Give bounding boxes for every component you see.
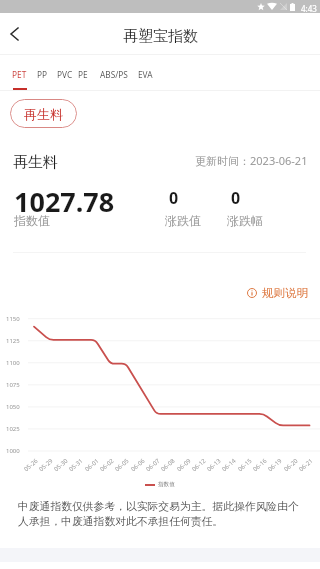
button[interactable]: PP [26,55,58,91]
staticText: 涨跌幅 [227,213,263,228]
staticText: 06-21 [297,457,315,473]
staticText: 1100 [6,359,20,367]
staticText: 1000 [6,447,20,455]
button[interactable]: 再生料 [10,99,77,128]
staticText: 06-07 [144,457,162,473]
staticText: 1027.78 [14,183,115,220]
staticText: 06-20 [282,457,300,473]
staticText: 指数值 [14,213,50,228]
button[interactable]: Back [1,13,27,55]
staticText: 规则说明 [262,286,308,300]
staticText: 06-19 [266,457,284,473]
staticText: 06-01 [83,457,101,473]
staticText: 06-15 [236,457,254,473]
staticText: 05-26 [22,457,40,473]
button[interactable]: PE [67,55,99,91]
staticText: 再生料 [13,153,58,172]
staticText: 06-13 [205,457,223,473]
staticText: 涨跌值 [165,213,201,228]
staticText: 1150 [6,315,20,323]
staticText: 06-06 [129,457,147,473]
staticText: 06-05 [113,457,131,473]
staticText: 更新时间：2023-06-21 [195,153,308,168]
staticText: 06-12 [190,457,208,473]
button[interactable]: PVC [49,55,81,91]
staticText: 1075 [6,381,20,389]
staticText: ABS/PS [100,69,128,80]
staticText: 1125 [6,337,20,345]
staticText: 中废通指数仅供参考，以实际交易为主。据此操作风险由个人承担，中废通指数对此不承担… [18,500,300,529]
staticText: 05-31 [67,457,85,473]
button[interactable]: 规则说明 [243,282,312,304]
staticText: 再塑宝指数 [123,27,198,46]
staticText: 再生料 [24,106,63,122]
staticText: 05-30 [52,457,70,473]
staticText: 06-02 [98,457,116,473]
staticText: 06-16 [251,457,269,473]
staticText: 05-29 [37,457,55,473]
staticText: 4:43 [301,3,317,14]
staticText: 1025 [6,425,20,433]
staticText: EVA [138,69,153,80]
staticText: PVC [57,69,73,80]
staticText: 06-14 [220,457,238,473]
button[interactable]: ABS/PS [98,55,130,91]
button[interactable]: PET [3,55,35,91]
button[interactable]: EVA [129,55,161,91]
staticText: 0 [169,187,179,209]
staticText: PE [78,69,88,80]
staticText: PET [12,69,27,80]
staticText: 指数值 [158,481,175,488]
staticText: PP [37,69,48,80]
staticText: 06-09 [175,457,193,473]
staticText: 1050 [6,403,20,411]
staticText: 0 [231,187,241,209]
staticText: 06-08 [159,457,177,473]
